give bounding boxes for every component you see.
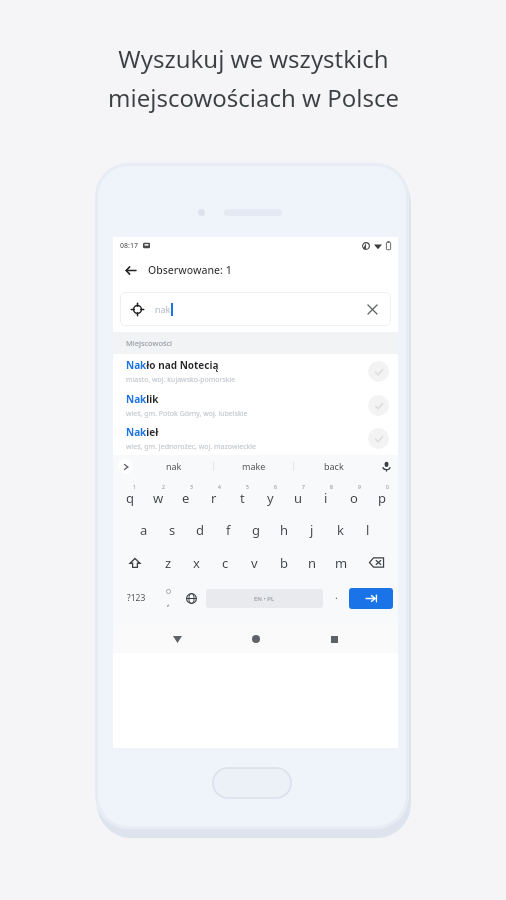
button[interactable]: Home bbox=[241, 625, 271, 653]
button[interactable]: Enter bbox=[349, 588, 393, 609]
staticText: b bbox=[280, 554, 288, 572]
button[interactable]: nak bbox=[120, 292, 391, 326]
button[interactable]: make bbox=[214, 460, 294, 472]
staticText: v bbox=[251, 554, 258, 572]
staticText: s bbox=[169, 521, 176, 539]
button[interactable]: m bbox=[327, 554, 356, 572]
button[interactable]: 1 bbox=[115, 480, 144, 513]
staticText: t bbox=[240, 489, 245, 507]
staticText: i bbox=[324, 489, 328, 507]
button[interactable]: l bbox=[354, 521, 382, 539]
staticText: Nakło nad Notecią bbox=[126, 358, 219, 372]
staticText: . bbox=[335, 588, 338, 602]
button[interactable]: 2 bbox=[144, 480, 172, 513]
staticText: Obserwowane: 1 bbox=[148, 263, 232, 277]
staticText: l bbox=[366, 521, 370, 539]
staticText: c bbox=[222, 554, 229, 572]
staticText: 0 bbox=[386, 484, 389, 491]
button[interactable]: 3 bbox=[172, 480, 200, 513]
staticText: h bbox=[280, 521, 289, 539]
button[interactable]: Naklik bbox=[113, 388, 398, 422]
button[interactable]: Voice input bbox=[374, 461, 398, 472]
staticText: u bbox=[294, 489, 303, 507]
staticText: miasto, woj. kujawsko-pomorskie bbox=[126, 375, 236, 385]
button[interactable]: 9 bbox=[340, 480, 368, 513]
staticText: o bbox=[350, 489, 358, 507]
staticText: , bbox=[167, 596, 170, 608]
button[interactable]: Shift bbox=[115, 557, 154, 569]
button[interactable]: EN • PL bbox=[206, 589, 323, 608]
staticText: 08:17 bbox=[120, 241, 138, 251]
staticText: 3 bbox=[190, 484, 193, 491]
button[interactable]: n bbox=[298, 554, 327, 572]
staticText: n bbox=[308, 554, 317, 572]
staticText: m bbox=[335, 554, 348, 572]
button[interactable]: 5 bbox=[228, 480, 256, 513]
button[interactable]: v bbox=[240, 554, 269, 572]
button[interactable]: c bbox=[211, 554, 240, 572]
button[interactable]: Follow location bbox=[368, 361, 389, 382]
staticText: 9 bbox=[358, 484, 361, 491]
button[interactable]: k bbox=[326, 521, 354, 539]
staticText: miejscowościach w Polsce bbox=[108, 81, 399, 114]
button[interactable]: f bbox=[214, 521, 242, 539]
button[interactable]: Clear bbox=[364, 301, 380, 317]
button[interactable]: d bbox=[186, 521, 214, 539]
staticText: e bbox=[182, 489, 190, 507]
staticText: wieś, gm. Potok Górny, woj. lubelskie bbox=[126, 409, 248, 419]
staticText: 2 bbox=[162, 484, 165, 491]
staticText: Wyszukuj we wszystkich bbox=[118, 42, 389, 75]
button[interactable]: More suggestions bbox=[118, 459, 133, 474]
button[interactable]: Recents bbox=[319, 625, 349, 653]
staticText: 8 bbox=[330, 484, 333, 491]
button[interactable]: g bbox=[242, 521, 270, 539]
staticText: Miejscowości bbox=[126, 338, 173, 348]
button[interactable]: back bbox=[294, 460, 374, 472]
button[interactable]: s bbox=[158, 521, 186, 539]
button[interactable]: Back bbox=[162, 625, 192, 653]
button[interactable]: Follow location bbox=[368, 428, 389, 449]
button[interactable]: z bbox=[154, 554, 182, 572]
staticText: x bbox=[193, 554, 200, 572]
staticText: nak bbox=[155, 303, 171, 315]
button[interactable]: 7 bbox=[284, 480, 312, 513]
staticText: nak bbox=[166, 460, 182, 472]
button[interactable]: Emoji bbox=[157, 589, 179, 608]
button[interactable]: 0 bbox=[368, 480, 396, 513]
staticText: y bbox=[267, 489, 274, 507]
staticText: EN • PL bbox=[254, 595, 275, 603]
staticText: wieś, gm. Jednorożec, woj. mazowieckie bbox=[126, 442, 256, 452]
button[interactable]: 4 bbox=[200, 480, 228, 513]
button[interactable]: Nakieł bbox=[113, 422, 398, 454]
button[interactable]: Back bbox=[120, 260, 140, 280]
staticText: r bbox=[211, 489, 217, 507]
staticText: g bbox=[252, 521, 260, 539]
staticText: 1 bbox=[133, 484, 136, 491]
button[interactable]: b bbox=[269, 554, 298, 572]
button[interactable]: x bbox=[182, 554, 211, 572]
staticText: Naklik bbox=[126, 392, 159, 406]
button[interactable]: a bbox=[129, 521, 158, 539]
staticText: d bbox=[196, 521, 204, 539]
button[interactable]: Change language bbox=[179, 593, 203, 604]
staticText: 5 bbox=[246, 484, 249, 491]
staticText: 6 bbox=[274, 484, 277, 491]
staticText: 7 bbox=[302, 484, 305, 491]
button[interactable]: Backspace bbox=[356, 557, 396, 568]
staticText: 4 bbox=[218, 484, 221, 491]
button[interactable]: ?123 bbox=[116, 592, 157, 604]
staticText: make bbox=[242, 460, 266, 472]
staticText: ?123 bbox=[127, 592, 146, 604]
staticText: back bbox=[324, 460, 344, 472]
button[interactable]: j bbox=[298, 521, 326, 539]
button[interactable]: nak bbox=[133, 460, 214, 472]
button[interactable]: Nakło nad Notecią bbox=[113, 354, 398, 388]
button[interactable]: 6 bbox=[256, 480, 284, 513]
staticText: p bbox=[378, 489, 386, 507]
button[interactable]: . bbox=[326, 591, 347, 605]
staticText: w bbox=[153, 489, 164, 507]
button[interactable]: h bbox=[270, 521, 298, 539]
button[interactable]: Follow location bbox=[368, 395, 389, 416]
staticText: z bbox=[165, 554, 172, 572]
button[interactable]: 8 bbox=[312, 480, 340, 513]
